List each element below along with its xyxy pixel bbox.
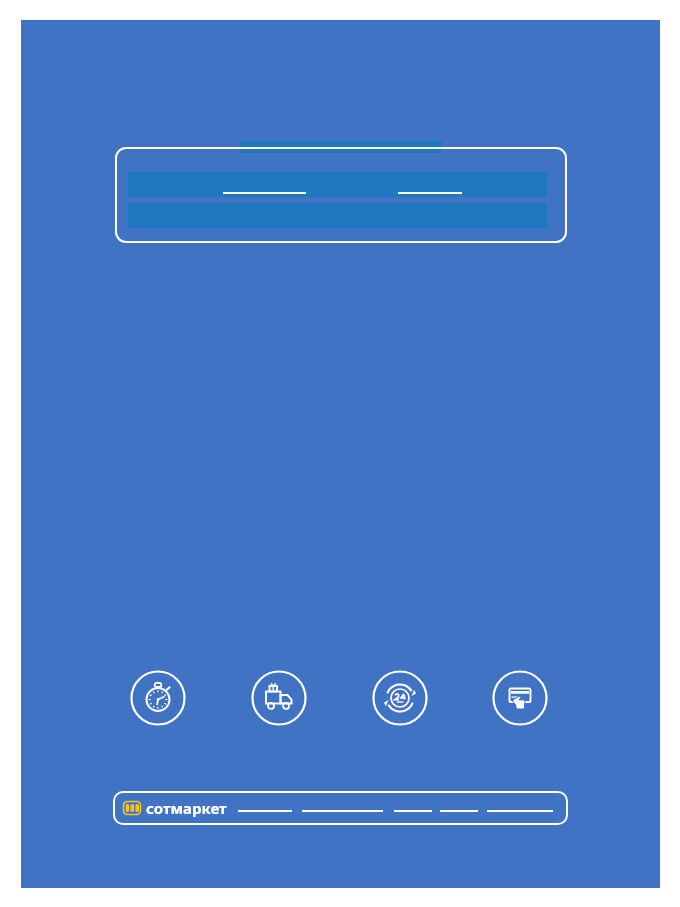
button[interactable]: сотмаркет [123,798,227,818]
button[interactable]: Shipping [251,670,307,726]
staticText: сотмаркет [146,798,227,818]
button[interactable]: Card payment [492,670,548,726]
button[interactable] [128,172,547,197]
button[interactable]: Fast delivery [130,670,186,726]
button[interactable]: 24 hour service [372,670,428,726]
button[interactable] [240,141,442,153]
